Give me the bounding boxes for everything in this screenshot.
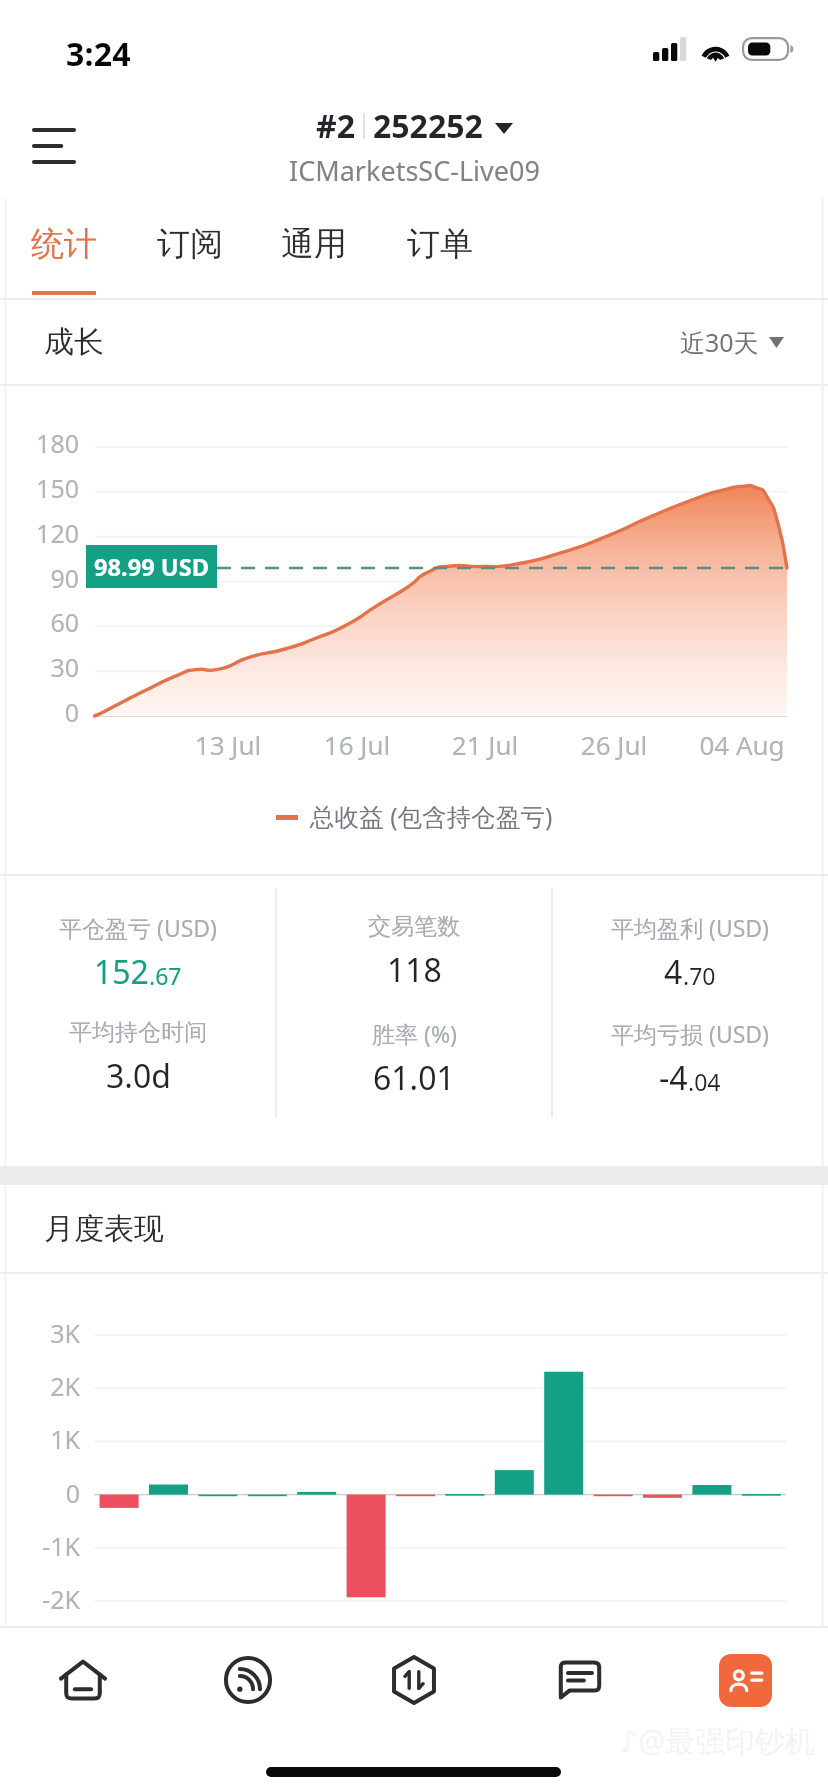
staticText: 成长 [44,323,104,361]
staticText: .67 [149,960,182,991]
button[interactable]: 通用 [251,196,377,294]
staticText: 订单 [407,223,473,265]
staticText: 180 [19,426,79,460]
staticText: 90 [19,561,79,595]
staticText: 平均持仓时间 [69,1018,207,1047]
button[interactable]: #2 [289,104,540,189]
button[interactable]: Profile [693,1636,797,1724]
button[interactable]: 近30天 [656,309,828,375]
staticText: -2K [16,1582,80,1616]
staticText: 2K [16,1369,80,1403]
button[interactable]: Home [31,1636,135,1724]
button[interactable]: Trade [362,1636,466,1724]
staticText: 120 [19,516,79,550]
staticText: 3:24 [66,32,131,76]
staticText: 平仓盈亏 (USD) [59,912,218,943]
staticText: 平均盈利 (USD) [611,912,770,943]
staticText: 252252 [373,104,483,148]
staticText: 118 [387,948,442,992]
staticText: #2 [316,104,355,148]
staticText: -1K [16,1529,80,1563]
button[interactable]: 平均亏损 (USD) [552,1018,828,1100]
staticText: ICMarketsSC-Live09 [289,152,540,189]
staticText: 0 [19,695,79,729]
button[interactable]: 订单 [377,196,503,294]
staticText: 13 Jul [168,727,288,762]
staticText: 订阅 [157,223,223,265]
staticText: 统计 [31,223,97,265]
button[interactable]: 平均盈利 (USD) [552,912,828,994]
staticText: 4 [664,950,683,994]
button[interactable]: 订阅 [127,196,253,294]
button[interactable]: Messages [528,1636,632,1724]
staticText: 26 Jul [554,727,674,762]
staticText: 04 Aug [682,727,802,762]
button[interactable]: 交易笔数 [276,912,552,992]
button[interactable]: 胜率 (%) [276,1018,552,1100]
staticText: 30 [19,650,79,684]
button[interactable]: 平均持仓时间 [0,1018,276,1098]
staticText: 通用 [281,223,347,265]
staticText: .70 [683,960,716,991]
staticText: .04 [688,1066,721,1097]
button[interactable]: Signals [196,1636,300,1724]
staticText: 交易笔数 [368,912,460,941]
staticText: 3K [16,1316,80,1350]
staticText: 1K [16,1422,80,1456]
staticText: 近30天 [680,325,759,359]
staticText: 60 [19,605,79,639]
staticText: 3.0d [106,1054,171,1098]
button[interactable]: Menu [16,108,92,184]
staticText: 21 Jul [425,727,545,762]
staticText: 98.99 USD [94,551,209,583]
staticText: 61.01 [373,1056,455,1100]
staticText: 150 [19,471,79,505]
button[interactable]: 平仓盈亏 (USD) [0,912,276,994]
staticText: 16 Jul [297,727,417,762]
button[interactable]: 统计 [1,196,127,294]
staticText: 月度表现 [44,1210,164,1248]
staticText: 152 [94,950,149,994]
staticText: -4 [659,1056,688,1100]
staticText: 平均亏损 (USD) [611,1018,770,1049]
staticText: 胜率 (%) [372,1018,457,1049]
staticText: ♪@最强印钞机 [619,1720,816,1761]
staticText: 总收益 (包含持仓盈亏) [310,800,553,834]
staticText: 0 [16,1476,80,1510]
